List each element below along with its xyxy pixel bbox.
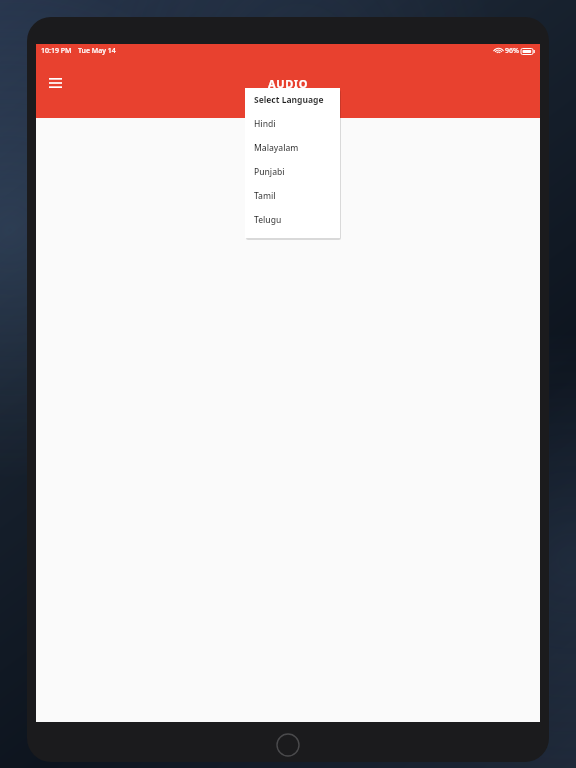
staticText: Select Language (254, 94, 324, 106)
button[interactable]: Hindi (245, 112, 340, 136)
staticText: 10:19 PM (41, 46, 72, 56)
staticText: Tamil (254, 190, 276, 202)
staticText: Tue May 14 (78, 46, 116, 56)
button[interactable]: Punjabi (245, 160, 340, 184)
button[interactable]: Malayalam (245, 136, 340, 160)
staticText: 96% (505, 46, 519, 56)
staticText: Telugu (254, 214, 282, 226)
staticText: Malayalam (254, 142, 299, 154)
button[interactable]: Home (274, 731, 302, 759)
button[interactable]: Open navigation menu (40, 68, 70, 98)
button[interactable]: Tamil (245, 184, 340, 208)
staticText: AUDIO (268, 76, 308, 91)
button[interactable]: Telugu (245, 208, 340, 232)
staticText: Punjabi (254, 166, 285, 178)
button[interactable]: Select Language (245, 88, 340, 112)
staticText: Hindi (254, 118, 276, 130)
